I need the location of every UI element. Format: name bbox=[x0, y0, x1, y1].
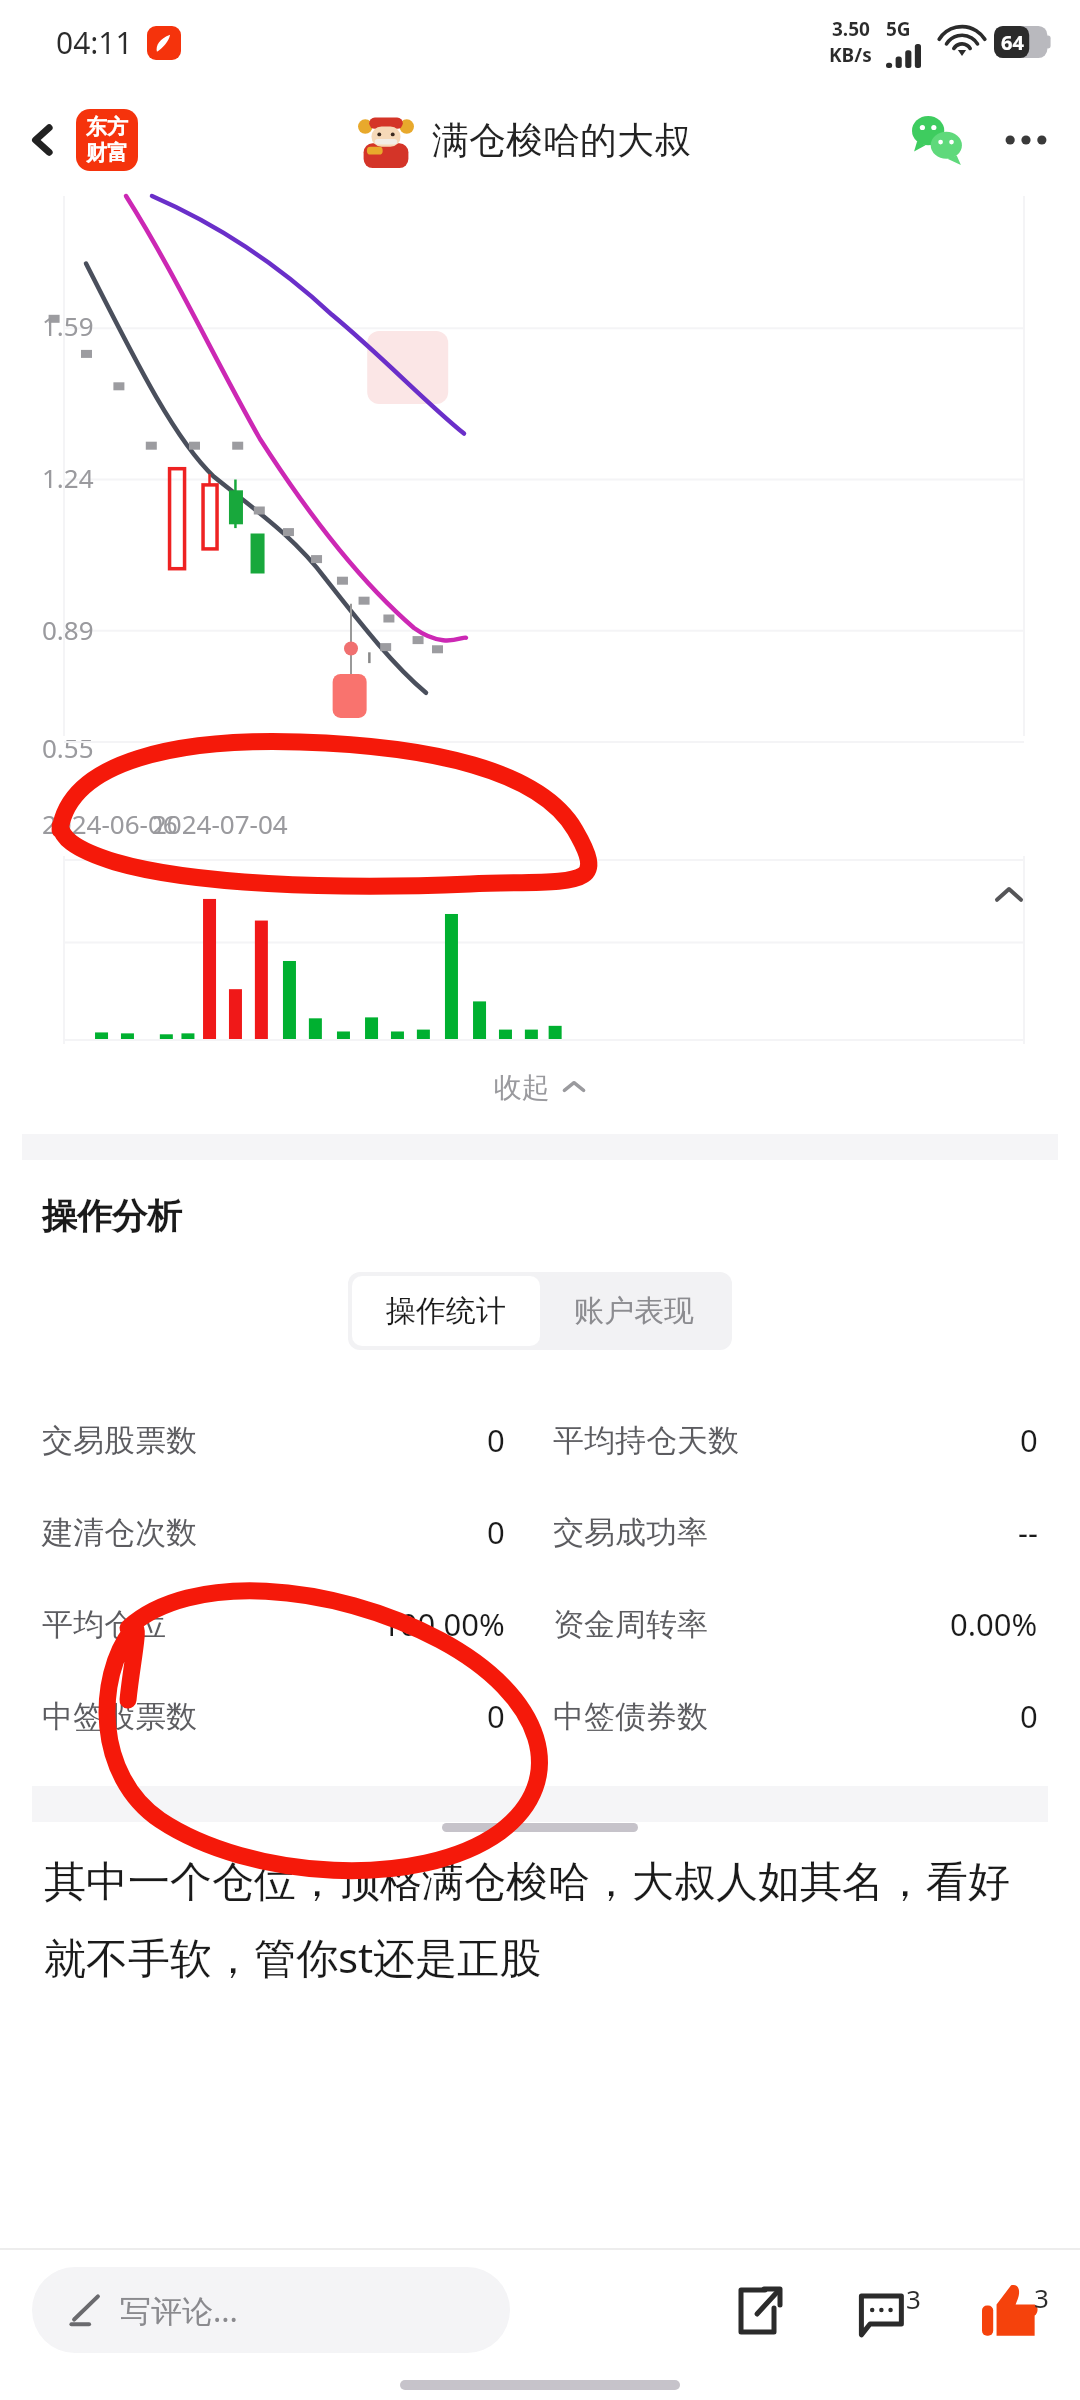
staticText: 交易股票数 bbox=[42, 1421, 197, 1460]
staticText: -- bbox=[1018, 1511, 1038, 1553]
button[interactable]: 操作统计 bbox=[352, 1276, 540, 1346]
staticText: 写评论... bbox=[120, 2289, 238, 2331]
button[interactable]: More options bbox=[996, 122, 1056, 158]
staticText: 收起 bbox=[494, 1070, 550, 1105]
staticText: 2024-07-04 bbox=[152, 806, 288, 841]
staticText: 0 bbox=[1020, 1419, 1038, 1461]
staticText: 0.00% bbox=[950, 1603, 1038, 1645]
staticText: 中签债券数 bbox=[553, 1697, 708, 1736]
staticText: 满仓梭哈的大叔 bbox=[432, 117, 691, 164]
staticText: 0 bbox=[487, 1419, 505, 1461]
button[interactable]: 收起 bbox=[0, 1044, 1080, 1130]
staticText: 其中一个仓位，顶格满仓梭哈，大叔人如其名，看好就不手软，管你st还是正股 bbox=[44, 1856, 1036, 1986]
button[interactable]: Share to WeChat bbox=[904, 106, 972, 174]
staticText: 3 bbox=[906, 2281, 921, 2316]
staticText: 0 bbox=[487, 1511, 505, 1553]
button[interactable]: Collapse chart bbox=[986, 872, 1032, 918]
staticText: 5G bbox=[886, 16, 911, 42]
button[interactable]: 写评论... bbox=[32, 2267, 510, 2353]
button[interactable]: Share bbox=[724, 2275, 794, 2345]
staticText: 3.50 bbox=[832, 16, 870, 42]
staticText: 1.24 bbox=[42, 460, 94, 495]
staticText: 平均仓位 bbox=[42, 1605, 166, 1644]
staticText: 3 bbox=[1034, 2280, 1049, 2315]
staticText: 0.89 bbox=[42, 612, 94, 647]
button[interactable]: Like, 3 bbox=[972, 2272, 1048, 2348]
staticText: 0 bbox=[487, 1695, 505, 1737]
button[interactable]: Back bbox=[20, 101, 144, 179]
staticText: 账户表现 bbox=[574, 1292, 694, 1330]
staticText: 建清仓次数 bbox=[42, 1513, 197, 1552]
staticText: 东方 bbox=[86, 114, 128, 140]
staticText: 财富 bbox=[86, 140, 128, 166]
staticText: 操作分析 bbox=[42, 1194, 182, 1238]
staticText: 操作统计 bbox=[386, 1292, 506, 1330]
staticText: 100.00% bbox=[382, 1603, 505, 1645]
staticText: 资金周转率 bbox=[553, 1605, 708, 1644]
staticText: 04:11 bbox=[56, 22, 133, 63]
staticText: KB/s bbox=[829, 42, 872, 68]
staticText: 0 bbox=[1020, 1695, 1038, 1737]
staticText: 交易成功率 bbox=[553, 1513, 708, 1552]
staticText: 1.59 bbox=[42, 308, 94, 343]
staticText: 2024-06-06 bbox=[42, 806, 178, 841]
staticText: 平均持仓天数 bbox=[553, 1421, 739, 1460]
button[interactable]: 账户表现 bbox=[540, 1276, 728, 1346]
staticText: 0.55 bbox=[42, 730, 94, 765]
staticText: 64 bbox=[1001, 29, 1024, 56]
button[interactable]: Comments, 3 bbox=[846, 2273, 920, 2347]
staticText: 中签股票数 bbox=[42, 1697, 197, 1736]
